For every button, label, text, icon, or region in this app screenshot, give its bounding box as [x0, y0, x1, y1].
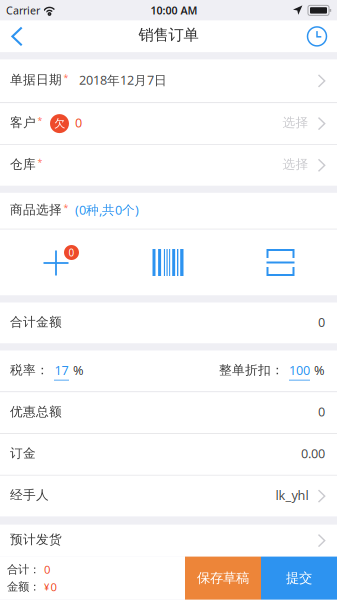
staticText: 合计：	[7, 562, 40, 576]
staticText: %	[314, 361, 325, 379]
staticText: *	[63, 202, 68, 214]
staticText: 商品选择	[10, 202, 62, 218]
staticText: 0	[68, 246, 74, 259]
staticText: 销售订单	[138, 25, 198, 44]
staticText: 选择	[282, 156, 308, 172]
staticText: %	[73, 361, 84, 379]
staticText: 欠	[54, 116, 65, 131]
staticText: 0.00	[301, 445, 325, 462]
button[interactable]: Add product	[0, 229, 112, 295]
staticText: *	[63, 72, 68, 84]
staticText: 保存草稿	[197, 570, 249, 586]
staticText: 整单折扣：	[219, 362, 284, 378]
button[interactable]: 保存草稿	[185, 557, 261, 600]
staticText: 0	[50, 579, 56, 594]
staticText: *	[37, 156, 42, 168]
staticText: 仓库	[10, 156, 36, 172]
staticText: 0	[44, 562, 50, 577]
staticText: ¥	[44, 580, 49, 593]
button[interactable]: Back	[0, 20, 34, 52]
staticText: *	[37, 115, 42, 126]
staticText: 单据日期	[10, 72, 62, 88]
staticText: 0	[75, 114, 82, 131]
button[interactable]: 提交	[261, 557, 337, 600]
staticText: 0	[318, 403, 325, 420]
button[interactable]: Scan barcode	[112, 229, 224, 295]
staticText: 经手人	[10, 487, 49, 503]
staticText: 选择	[282, 115, 308, 131]
staticText: lk_yhl	[275, 486, 308, 504]
button[interactable]: 经手人	[0, 476, 337, 517]
staticText: 客户	[10, 115, 36, 131]
staticText: 2018年12月7日	[79, 71, 167, 89]
staticText: (0种,共0个)	[75, 201, 139, 218]
staticText: 提交	[286, 570, 312, 586]
button[interactable]: Order history	[299, 20, 335, 52]
staticText: 合计金额	[10, 314, 62, 330]
staticText: 0	[318, 313, 325, 331]
staticText: 优惠总额	[10, 404, 62, 420]
staticText: 税率：	[10, 362, 49, 378]
staticText: 17	[54, 361, 68, 379]
button[interactable]: 仓库	[0, 145, 337, 186]
button[interactable]: Scan code	[224, 229, 337, 295]
staticText: 100	[289, 361, 310, 379]
staticText: 预计发货	[10, 532, 62, 548]
staticText: 金额：	[7, 580, 40, 594]
staticText: Carrier	[6, 3, 40, 18]
button[interactable]: 单据日期	[0, 59, 337, 102]
button[interactable]: 客户	[0, 103, 337, 144]
button[interactable]: 预计发货	[0, 525, 337, 557]
staticText: 10:00 AM	[150, 3, 197, 18]
staticText: 订金	[10, 445, 36, 461]
